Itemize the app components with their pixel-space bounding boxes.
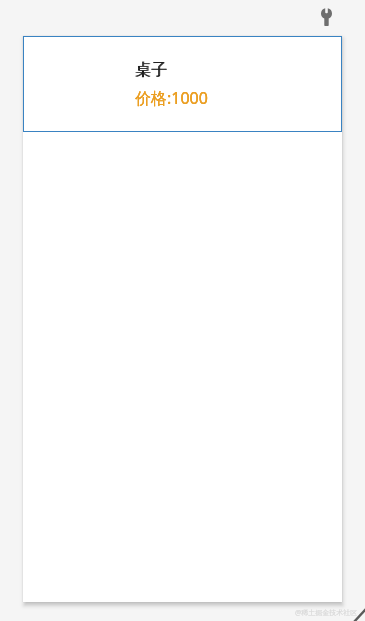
staticText: 价格:1000 xyxy=(135,87,208,109)
staticText: 桌子 xyxy=(136,60,168,80)
button[interactable]: Build xyxy=(314,5,338,29)
staticText: 桌子 xyxy=(135,60,167,80)
staticText: @稀土掘金技术社区 xyxy=(295,608,358,618)
button[interactable]: 桌子 xyxy=(23,36,342,132)
staticText: 价格:1000 xyxy=(135,87,208,109)
